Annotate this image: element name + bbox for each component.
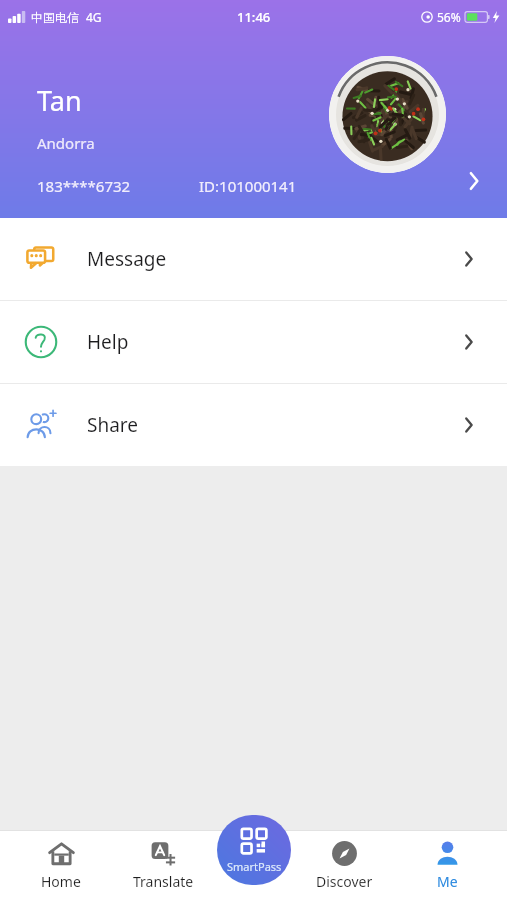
button[interactable]: Share <box>0 384 507 466</box>
staticText: 56% <box>437 9 461 25</box>
button[interactable]: Home <box>19 840 103 891</box>
button[interactable]: Translate <box>121 840 205 891</box>
staticText: 11:46 <box>237 8 271 26</box>
button[interactable]: Tan <box>0 40 507 218</box>
button[interactable]: Discover <box>302 840 386 891</box>
staticText: SmartPass <box>227 859 282 874</box>
staticText: Tan <box>37 82 82 119</box>
button[interactable]: Me <box>405 840 489 891</box>
staticText: Discover <box>316 872 373 891</box>
staticText: Share <box>87 412 139 438</box>
staticText: 4G <box>86 9 102 25</box>
button[interactable]: Help <box>0 301 507 383</box>
staticText: Me <box>437 872 458 891</box>
button[interactable]: SmartPass <box>217 815 291 885</box>
staticText: Message <box>87 246 167 272</box>
other: Open profile <box>455 163 491 199</box>
staticText: 中国电信 <box>31 10 79 25</box>
button[interactable]: Message <box>0 218 507 300</box>
staticText: ID:101000141 <box>199 176 297 196</box>
staticText: 183****6732 <box>37 176 131 196</box>
staticText: Translate <box>133 872 194 891</box>
staticText: Andorra <box>37 133 95 153</box>
staticText: Help <box>87 329 129 355</box>
staticText: Home <box>41 872 81 891</box>
